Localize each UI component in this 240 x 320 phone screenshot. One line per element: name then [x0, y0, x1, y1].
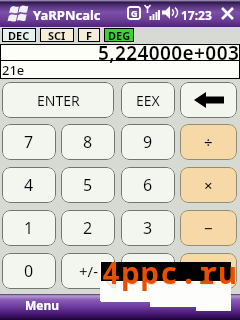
button[interactable]: 5: [61, 167, 115, 203]
staticText: 5: [83, 174, 93, 196]
staticText: 3: [143, 217, 153, 239]
staticText: 4: [24, 174, 34, 196]
staticText: YaRPNcalc: [33, 6, 101, 24]
staticText: G: [131, 7, 138, 19]
staticText: 2: [83, 217, 93, 239]
button[interactable]: F: [78, 28, 100, 42]
staticText: Menu: [25, 297, 60, 313]
staticText: 8: [83, 131, 93, 153]
button[interactable]: ENTER: [2, 82, 114, 118]
staticText: 21e: [2, 61, 25, 79]
staticText: 17:23: [181, 7, 212, 23]
staticText: .: [146, 260, 151, 282]
staticText: 5,224000e+003: [98, 40, 240, 66]
staticText: +: [204, 261, 213, 281]
staticText: −: [204, 218, 213, 238]
staticText: DEC: [8, 28, 30, 42]
staticText: 9: [143, 131, 153, 153]
button[interactable]: 1: [2, 210, 56, 246]
button[interactable]: 7: [2, 124, 56, 160]
staticText: 0: [24, 260, 34, 282]
button[interactable]: +: [180, 253, 237, 289]
staticText: F: [86, 28, 93, 42]
button[interactable]: DEG: [104, 28, 134, 42]
button[interactable]: 8: [61, 124, 115, 160]
button[interactable]: +/-: [61, 253, 115, 289]
staticText: +/-: [79, 261, 98, 281]
staticText: ÷: [204, 132, 213, 152]
button[interactable]: −: [180, 210, 237, 246]
button[interactable]: .: [121, 253, 175, 289]
button[interactable]: 3: [121, 210, 175, 246]
button[interactable]: DEC: [2, 28, 36, 42]
staticText: 4ppc.ru: [102, 252, 238, 293]
button[interactable]: 0: [2, 253, 56, 289]
staticText: 4ppc.ru: [102, 281, 231, 294]
button[interactable]: [0, 294, 240, 320]
button[interactable]: ÷: [180, 124, 237, 160]
button[interactable]: 9: [121, 124, 175, 160]
staticText: SCI: [48, 28, 66, 42]
staticText: ENTER: [37, 91, 80, 110]
staticText: 1: [24, 217, 34, 239]
staticText: EEX: [136, 91, 160, 110]
button[interactable]: [180, 82, 237, 118]
button[interactable]: 2: [61, 210, 115, 246]
button[interactable]: 4: [2, 167, 56, 203]
button[interactable]: ×: [180, 167, 237, 203]
button[interactable]: EEX: [121, 82, 175, 118]
button[interactable]: SCI: [40, 28, 74, 42]
button[interactable]: [220, 6, 236, 21]
staticText: ×: [204, 175, 213, 195]
button[interactable]: 6: [121, 167, 175, 203]
staticText: 6: [143, 174, 153, 196]
staticText: 7: [24, 131, 34, 153]
staticText: DEG: [108, 28, 131, 42]
